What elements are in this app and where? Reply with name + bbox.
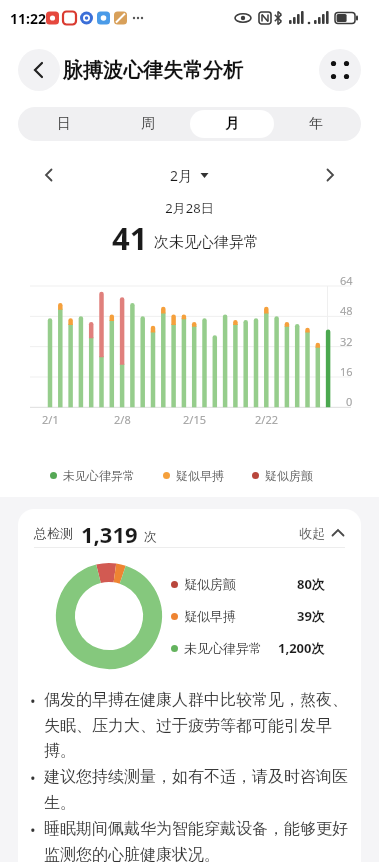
staticText: 32 (340, 334, 353, 349)
staticText: 48 (340, 303, 353, 318)
staticText: 2/22 (255, 412, 278, 427)
button[interactable]: 年 (274, 110, 358, 138)
staticText: 年 (309, 115, 323, 133)
staticText: 11:22 (10, 9, 46, 28)
staticText: • (30, 820, 44, 840)
button[interactable]: 日 (21, 110, 106, 138)
button[interactable]: 2月 (170, 166, 209, 185)
staticText: 疑似房颤 (184, 576, 236, 592)
staticText: 2/15 (183, 412, 206, 427)
staticText: 收起 (299, 525, 325, 541)
staticText: 39次 (297, 607, 325, 625)
staticText: 睡眠期间佩戴华为智能穿戴设备，能够更好 监测您的心脏健康状况。 (44, 819, 348, 862)
staticText: 次 (144, 528, 157, 544)
staticText: 次未见心律异常 (154, 233, 259, 252)
button[interactable] (18, 49, 60, 91)
staticText: 未见心律异常 (184, 640, 262, 656)
staticText: 0 (346, 394, 353, 409)
staticText: 偶发的早搏在健康人群中比较常见，熬夜、 失眠、压力大、过于疲劳等都可能引发早 搏… (44, 690, 348, 760)
staticText: 周 (141, 115, 155, 133)
button[interactable]: 总检测 (34, 519, 345, 547)
staticText: 疑似早搏 (184, 608, 236, 624)
staticText: 16 (340, 364, 353, 379)
staticText: 1,200次 (278, 639, 325, 657)
staticText: 1,319 (81, 519, 138, 547)
staticText: 41 (112, 217, 148, 259)
staticText: 月 (225, 115, 239, 133)
staticText: 脉搏波心律失常分析 (63, 58, 243, 83)
staticText: 80次 (297, 575, 325, 593)
staticText: 2/8 (114, 412, 131, 427)
staticText: 未见心律异常 (63, 468, 135, 483)
staticText: 日 (57, 115, 71, 133)
button[interactable] (319, 49, 361, 91)
button[interactable]: 月 (190, 110, 274, 138)
staticText: 建议您持续测量，如有不适，请及时咨询医 生。 (44, 767, 348, 812)
staticText: 2月28日 (0, 199, 379, 217)
button[interactable]: 周 (106, 110, 190, 138)
staticText: 总检测 (34, 525, 73, 541)
button[interactable] (34, 160, 64, 190)
staticText: • (30, 768, 44, 788)
staticText: 64 (340, 273, 353, 288)
staticText: 疑似房颤 (265, 468, 313, 483)
staticText: 2月 (170, 166, 193, 185)
button[interactable] (315, 160, 345, 190)
staticText: 2/1 (42, 412, 59, 427)
staticText: 疑似早搏 (176, 468, 224, 483)
staticText: • (30, 691, 44, 711)
